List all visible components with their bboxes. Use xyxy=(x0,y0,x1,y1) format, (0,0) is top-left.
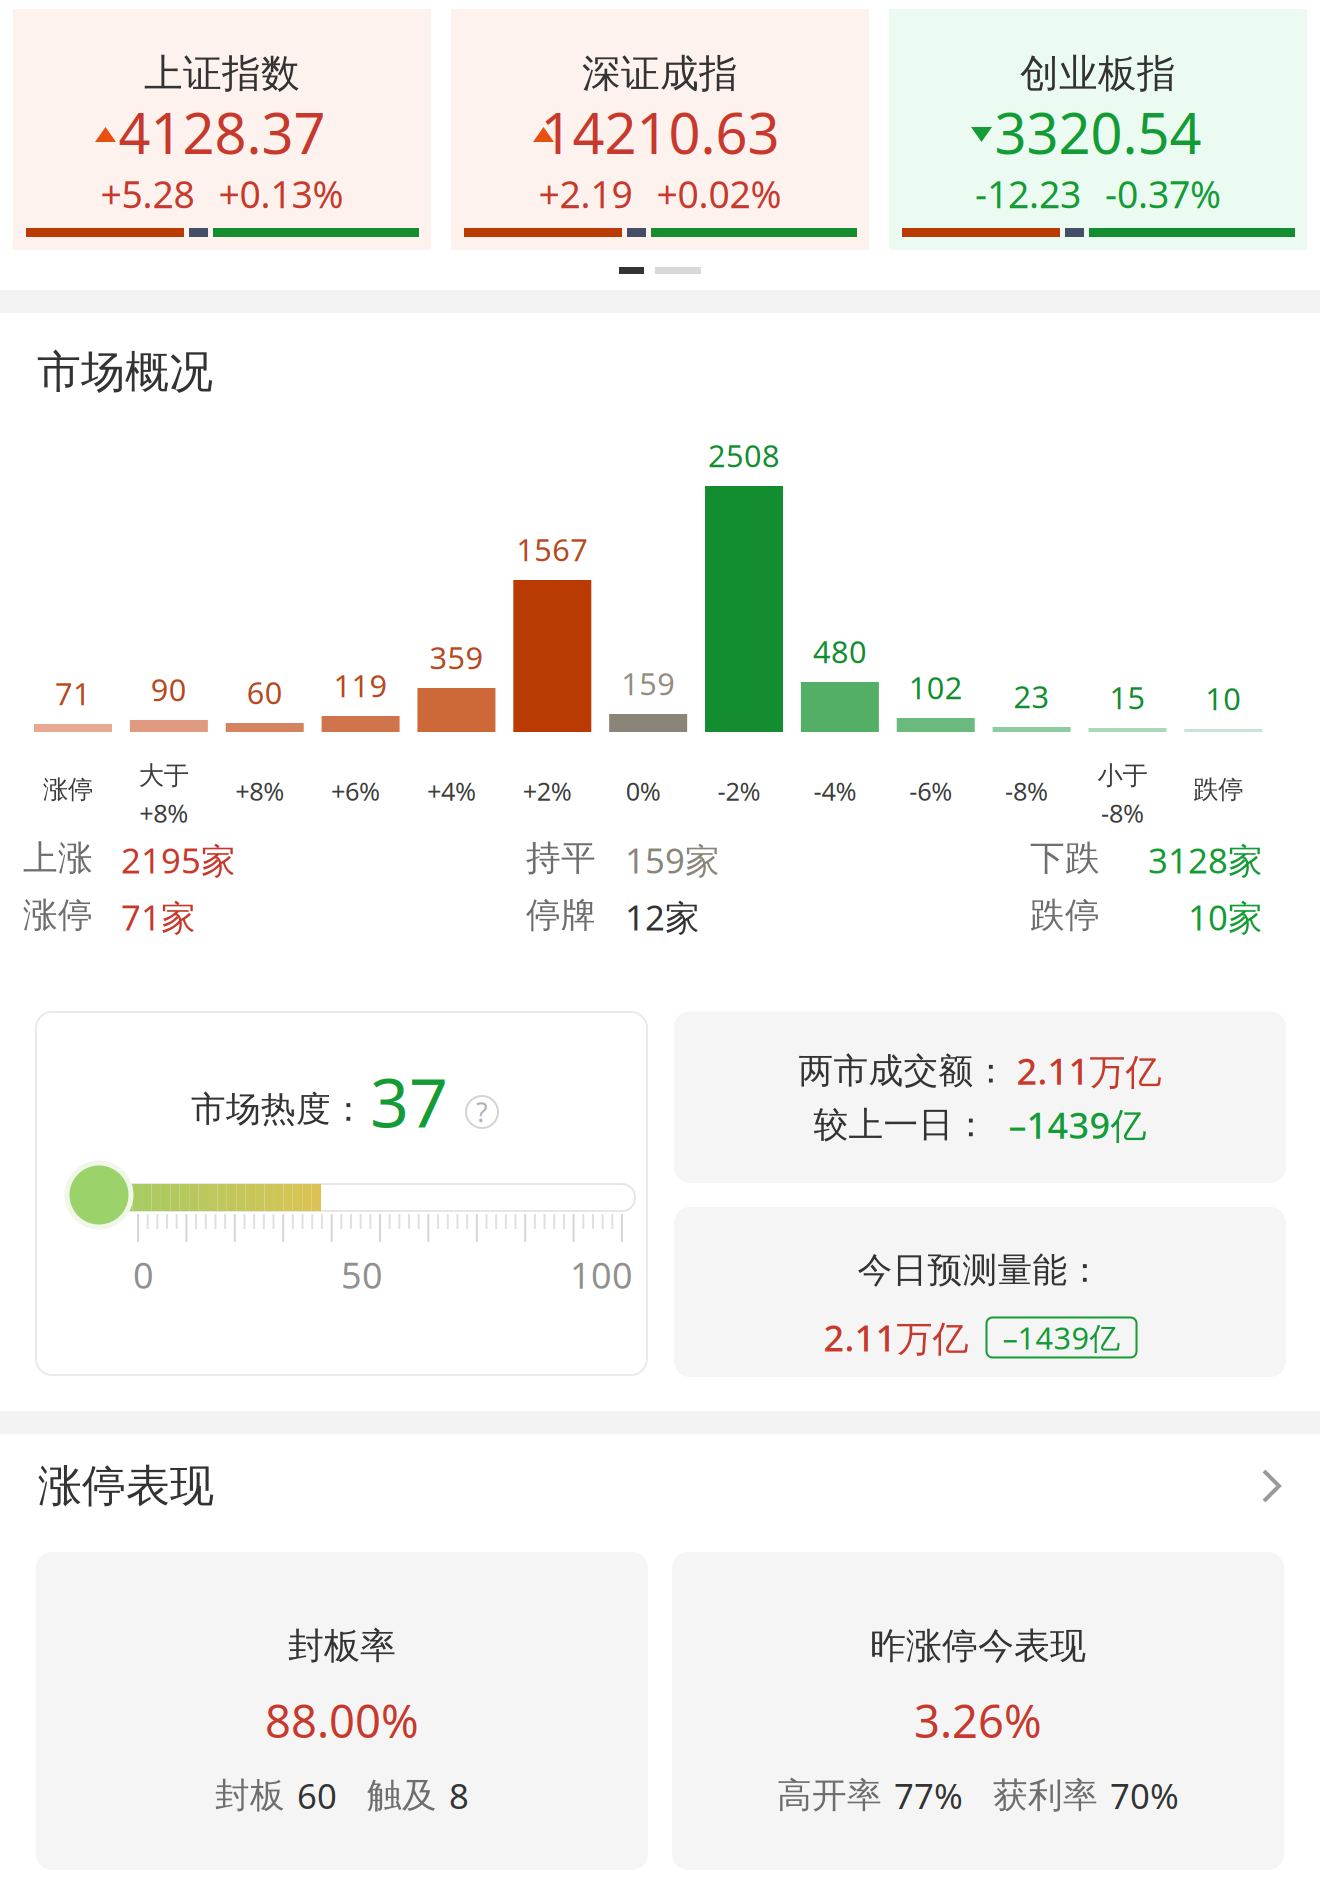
staticText: 102 xyxy=(909,667,963,708)
staticText: 停牌 xyxy=(526,894,596,937)
staticText: +5.28 xyxy=(100,169,194,219)
staticText: 2195家 xyxy=(121,837,236,883)
button[interactable]: 封板率 xyxy=(36,1552,648,1870)
staticText: 2.11万亿 xyxy=(1016,1047,1161,1095)
staticText: ? xyxy=(476,1094,488,1130)
staticText: 71家 xyxy=(121,894,196,940)
staticText: 119 xyxy=(334,665,388,706)
staticText: 封板率 xyxy=(288,1624,396,1668)
staticText: 480 xyxy=(813,631,867,672)
staticText: 0% xyxy=(626,774,661,808)
staticText: 涨停表现 xyxy=(38,1459,214,1513)
staticText: 4128.37 xyxy=(118,95,325,169)
staticText: 市场热度： xyxy=(191,1088,366,1131)
staticText: +8% xyxy=(139,796,188,830)
staticText: 高开率 xyxy=(777,1774,882,1817)
staticText: 12家 xyxy=(625,894,700,940)
staticText: 跌停 xyxy=(1193,774,1243,805)
staticText: 50 xyxy=(341,1251,383,1299)
staticText: 上涨 xyxy=(23,837,93,880)
staticText: 下跌 xyxy=(1030,837,1100,880)
staticText: 359 xyxy=(429,637,483,678)
staticText: 8 xyxy=(449,1772,469,1818)
staticText: –1439亿 xyxy=(1002,1317,1120,1358)
staticText: 60 xyxy=(297,1772,337,1818)
button[interactable]: 涨停表现 xyxy=(0,1456,1320,1516)
staticText: 跌停 xyxy=(1030,894,1100,937)
button[interactable]: 上证指数 xyxy=(13,9,431,250)
staticText: 14210.63 xyxy=(540,95,779,169)
staticText: 获利率 xyxy=(993,1774,1098,1817)
staticText: 深证成指 xyxy=(582,50,738,97)
staticText: 小于 xyxy=(1097,760,1147,791)
staticText: 15 xyxy=(1109,677,1145,718)
staticText: 涨停 xyxy=(23,894,93,937)
staticText: 触及 xyxy=(367,1774,437,1817)
staticText: 2508 xyxy=(708,435,780,476)
staticText: +4% xyxy=(427,774,476,808)
staticText: 37 xyxy=(370,1056,448,1146)
staticText: +2.19 xyxy=(538,169,632,219)
staticText: 100 xyxy=(570,1251,633,1299)
staticText: 创业板指 xyxy=(1020,50,1176,97)
staticText: 10 xyxy=(1205,678,1241,719)
staticText: 159家 xyxy=(625,837,720,883)
staticText: 3128家 xyxy=(1148,837,1263,883)
staticText: 两市成交额： xyxy=(798,1050,1008,1092)
staticText: -8% xyxy=(1005,774,1048,808)
staticText: +2% xyxy=(523,774,572,808)
staticText: 市场概况 xyxy=(37,345,213,399)
staticText: -6% xyxy=(909,774,952,808)
staticText: 10家 xyxy=(1188,894,1263,940)
staticText: +0.13% xyxy=(218,169,343,219)
staticText: +0.02% xyxy=(656,169,781,219)
staticText: 封板 xyxy=(215,1774,285,1817)
staticText: 90 xyxy=(151,669,187,710)
staticText: -12.23 xyxy=(975,169,1081,219)
staticText: 涨停 xyxy=(43,774,93,805)
staticText: 今日预测量能： xyxy=(857,1249,1102,1292)
staticText: 昨涨停今表现 xyxy=(870,1624,1086,1668)
staticText: 大于 xyxy=(139,760,189,791)
staticText: 71 xyxy=(55,673,91,714)
staticText: -0.37% xyxy=(1105,169,1221,219)
staticText: 3.26% xyxy=(914,1690,1042,1750)
staticText: 较上一日： xyxy=(813,1103,988,1146)
staticText: 3320.54 xyxy=(994,95,1201,169)
staticText: -4% xyxy=(813,774,856,808)
staticText: –1439亿 xyxy=(1008,1101,1146,1149)
button[interactable]: 创业板指 xyxy=(889,9,1307,250)
staticText: 2.11万亿 xyxy=(823,1314,968,1361)
staticText: 23 xyxy=(1014,676,1050,717)
staticText: 1567 xyxy=(516,529,588,570)
staticText: +8% xyxy=(235,774,284,808)
staticText: 159 xyxy=(621,663,675,704)
staticText: -2% xyxy=(717,774,760,808)
staticText: 70% xyxy=(1110,1772,1179,1818)
staticText: 60 xyxy=(247,672,283,713)
button[interactable]: 深证成指 xyxy=(451,9,869,250)
button[interactable]: 昨涨停今表现 xyxy=(672,1552,1284,1870)
staticText: +6% xyxy=(331,774,380,808)
staticText: 持平 xyxy=(526,837,596,880)
staticText: 上证指数 xyxy=(144,50,300,97)
staticText: 88.00% xyxy=(265,1690,419,1750)
staticText: 0 xyxy=(133,1251,154,1299)
staticText: -8% xyxy=(1101,796,1144,830)
staticText: 77% xyxy=(894,1772,963,1818)
